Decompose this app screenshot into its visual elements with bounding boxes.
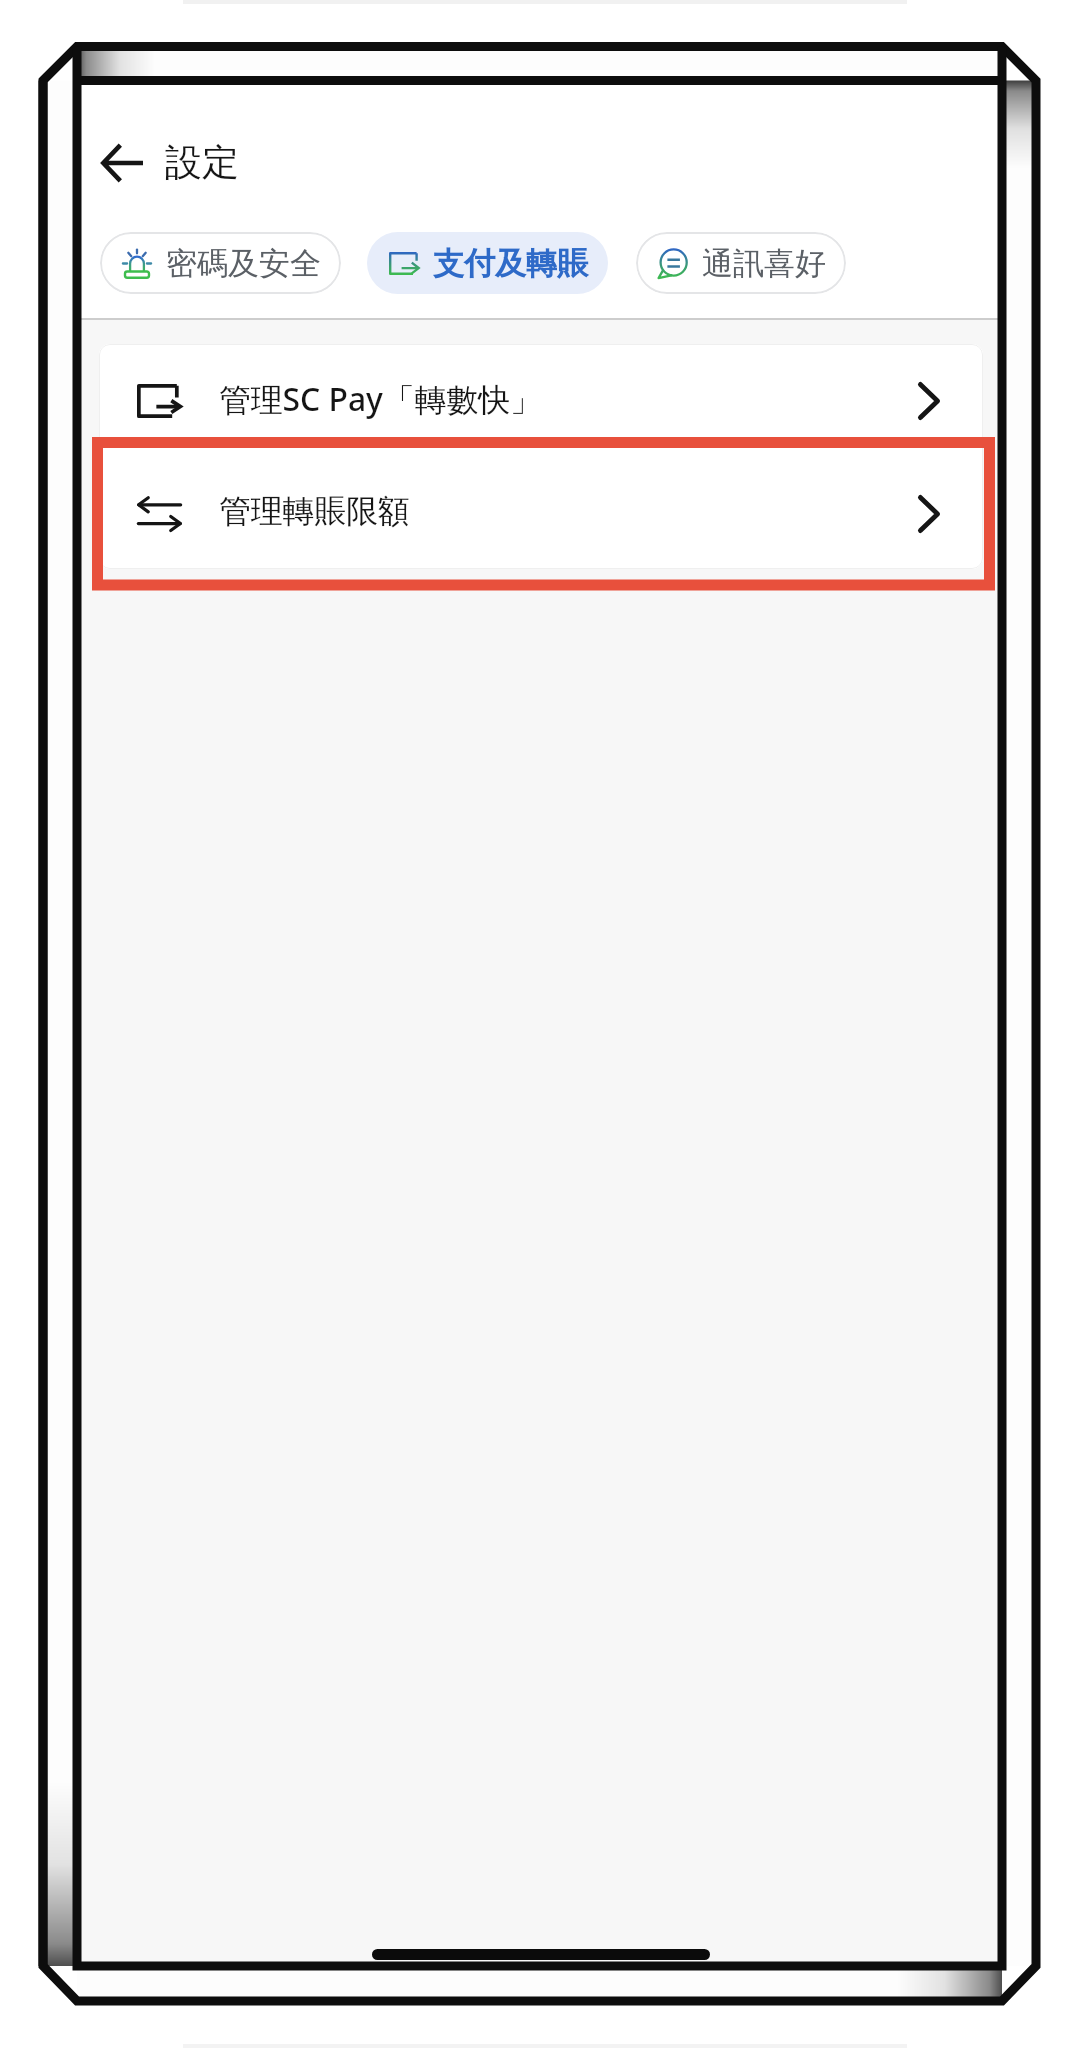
button[interactable]: 通訊喜好: [636, 232, 846, 294]
staticText: 管理SC Pay「轉數快」: [219, 377, 542, 420]
button[interactable]: Back: [89, 130, 155, 196]
staticText: 通訊喜好: [702, 244, 826, 283]
button[interactable]: 密碼及安全: [100, 232, 341, 294]
staticText: 管理轉賬限額: [219, 491, 410, 531]
staticText: 支付及轉賬: [433, 244, 588, 283]
button[interactable]: 管理轉賬限額: [99, 452, 983, 569]
button[interactable]: 管理SC Pay「轉數快」: [99, 344, 983, 452]
staticText: 密碼及安全: [166, 244, 321, 283]
button[interactable]: 支付及轉賬: [367, 232, 608, 294]
staticText: 設定: [165, 139, 239, 186]
